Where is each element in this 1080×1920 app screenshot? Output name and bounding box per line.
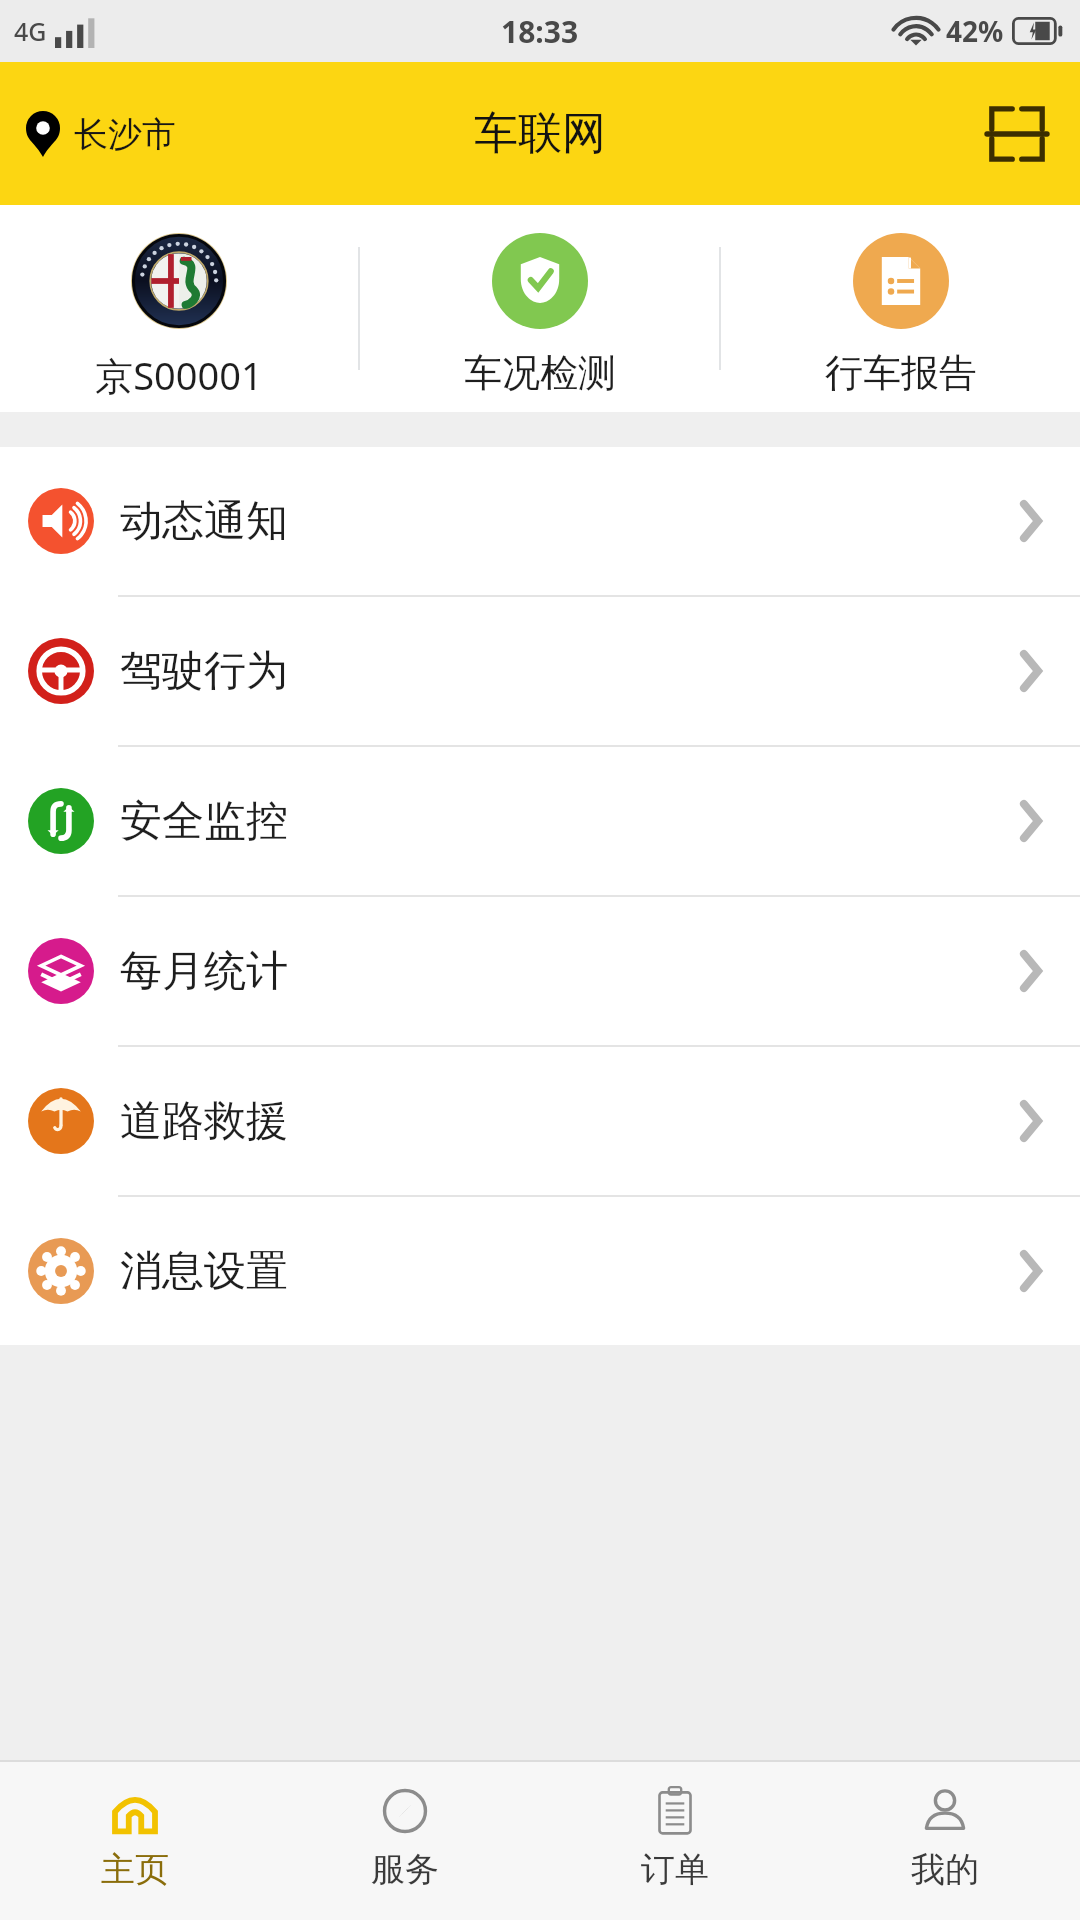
staticText: 我的 bbox=[911, 1848, 979, 1891]
staticText: 每月统计 bbox=[120, 945, 288, 998]
button[interactable]: 每月统计 bbox=[0, 897, 1080, 1045]
button[interactable]: 车况检测 bbox=[360, 205, 719, 412]
button[interactable]: 服务 bbox=[270, 1762, 540, 1920]
staticText: 主页 bbox=[101, 1848, 169, 1891]
staticText: 车联网 bbox=[474, 106, 606, 161]
staticText: 京S00001 bbox=[95, 349, 263, 401]
staticText: 行车报告 bbox=[825, 349, 977, 397]
button[interactable]: 京S00001 bbox=[0, 205, 358, 412]
button[interactable]: 驾驶行为 bbox=[0, 597, 1080, 745]
button[interactable]: 我的 bbox=[810, 1762, 1080, 1920]
button[interactable]: 订单 bbox=[540, 1762, 810, 1920]
button[interactable]: 安全监控 bbox=[0, 747, 1080, 895]
staticText: 动态通知 bbox=[120, 495, 288, 548]
button[interactable]: 动态通知 bbox=[0, 447, 1080, 595]
button[interactable]: Scan QR code bbox=[986, 103, 1080, 165]
button[interactable]: 行车报告 bbox=[721, 205, 1080, 412]
staticText: 道路救援 bbox=[120, 1095, 288, 1148]
staticText: 42% bbox=[946, 12, 1004, 50]
staticText: 订单 bbox=[641, 1848, 709, 1891]
staticText: 4G bbox=[14, 14, 47, 48]
staticText: 消息设置 bbox=[120, 1245, 288, 1298]
staticText: 服务 bbox=[371, 1848, 439, 1891]
staticText: 18:33 bbox=[501, 11, 579, 52]
staticText: 车况检测 bbox=[464, 349, 616, 397]
staticText: 长沙市 bbox=[74, 113, 176, 156]
button[interactable]: 消息设置 bbox=[0, 1197, 1080, 1345]
staticText: 安全监控 bbox=[120, 795, 288, 848]
staticText: 驾驶行为 bbox=[120, 645, 288, 698]
button[interactable]: 道路救援 bbox=[0, 1047, 1080, 1195]
button[interactable]: 主页 bbox=[0, 1762, 270, 1920]
button[interactable]: 长沙市 bbox=[0, 101, 194, 167]
